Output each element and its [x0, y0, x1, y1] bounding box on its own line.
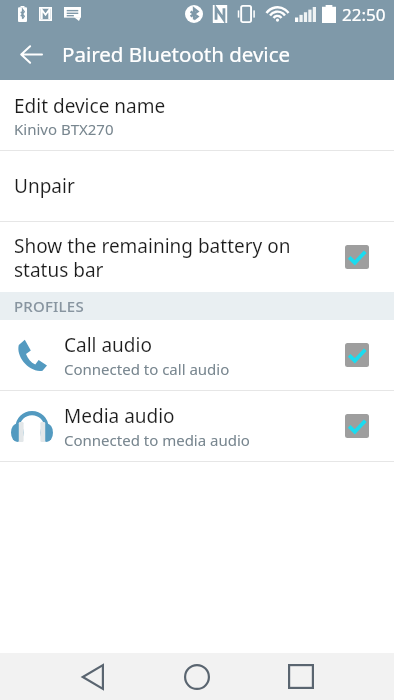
button[interactable]: Navigate up [0, 28, 62, 80]
staticText: Kinivo BTX270 [14, 119, 114, 139]
button[interactable]: Home [157, 653, 237, 700]
other: Toggle [345, 414, 369, 438]
staticText: Edit device name [14, 93, 166, 119]
button[interactable]: Back [52, 653, 132, 700]
other: Toggle [345, 245, 369, 269]
staticText: Connected to media audio [64, 430, 250, 450]
staticText: Connected to call audio [64, 359, 230, 379]
button[interactable]: Show the remaining battery on status bar [0, 222, 394, 292]
staticText: Show the remaining battery on status bar [14, 233, 325, 282]
other: Toggle [345, 343, 369, 367]
button[interactable]: Recent apps [261, 653, 341, 700]
staticText: PROFILES [14, 296, 84, 316]
button[interactable]: Media audio [0, 391, 394, 461]
button[interactable]: Call audio [0, 320, 394, 390]
staticText: Media audio [64, 403, 175, 429]
staticText: Call audio [64, 332, 152, 358]
button[interactable]: Edit device name [0, 80, 394, 150]
button[interactable]: Unpair [0, 151, 394, 221]
staticText: Paired Bluetooth device [62, 40, 291, 68]
staticText: 22:50 [342, 3, 386, 26]
staticText: Unpair [14, 173, 75, 199]
